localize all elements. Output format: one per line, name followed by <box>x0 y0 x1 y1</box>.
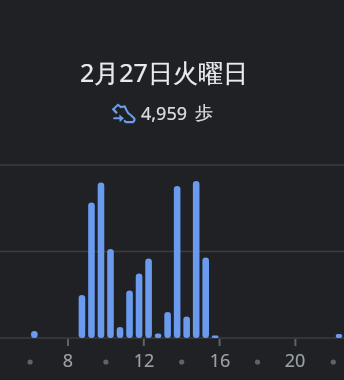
button[interactable]: Steps <box>112 101 213 126</box>
staticText: 4,959 <box>141 101 188 126</box>
staticText: 12 <box>124 348 164 373</box>
staticText: 2月27日火曜日 <box>80 55 248 89</box>
staticText: 16 <box>200 348 240 373</box>
staticText: 8 <box>48 348 88 373</box>
staticText: 20 <box>275 348 315 373</box>
other: Steps <box>112 104 135 123</box>
staticText: 歩 <box>195 102 213 125</box>
